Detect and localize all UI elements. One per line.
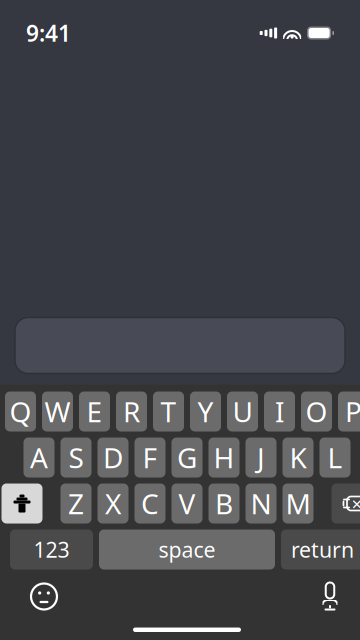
staticText: return — [291, 535, 354, 564]
button[interactable]: P — [338, 391, 360, 431]
button[interactable]: N — [245, 483, 276, 523]
button[interactable]: D — [97, 437, 128, 477]
button[interactable]: Emoji — [22, 575, 66, 617]
staticText: A — [30, 439, 48, 476]
button[interactable]: W — [42, 391, 73, 431]
button[interactable]: B — [208, 483, 239, 523]
staticText: 9:41 — [26, 18, 71, 48]
button[interactable]: return — [281, 529, 360, 569]
button[interactable]: Delete — [331, 483, 360, 523]
staticText: U — [232, 393, 252, 430]
button[interactable]: Shift — [1, 483, 42, 523]
staticText: W — [44, 393, 70, 430]
button[interactable]: V — [171, 483, 202, 523]
staticText: E — [86, 393, 102, 430]
button[interactable]: U — [227, 391, 258, 431]
staticText: O — [305, 393, 327, 430]
staticText: Q — [9, 393, 31, 430]
button[interactable]: R — [116, 391, 147, 431]
staticText: S — [68, 439, 83, 476]
button[interactable]: space — [99, 529, 275, 569]
staticText: × — [351, 491, 360, 516]
button[interactable]: C — [134, 483, 165, 523]
staticText: G — [177, 439, 197, 476]
staticText: R — [123, 393, 140, 430]
button[interactable]: H — [208, 437, 239, 477]
staticText: K — [289, 439, 306, 476]
button[interactable]: Dictation — [308, 575, 352, 617]
staticText: space — [158, 535, 215, 564]
button[interactable]: Text field — [0, 317, 360, 384]
button[interactable]: S — [60, 437, 91, 477]
staticText: J — [257, 439, 265, 476]
button[interactable]: Y — [190, 391, 221, 431]
button[interactable]: 123 — [10, 529, 93, 569]
staticText: F — [142, 439, 157, 476]
staticText: C — [141, 485, 159, 522]
button[interactable]: T — [153, 391, 184, 431]
staticText: P — [345, 393, 360, 430]
staticText: D — [103, 439, 123, 476]
staticText: L — [327, 439, 342, 476]
staticText: I — [275, 393, 284, 430]
staticText: Y — [197, 393, 213, 430]
button[interactable]: I — [264, 391, 295, 431]
button[interactable]: O — [301, 391, 332, 431]
staticText: T — [160, 393, 176, 430]
staticText: X — [105, 485, 121, 522]
staticText: H — [213, 439, 234, 476]
button[interactable]: X — [97, 483, 128, 523]
staticText: V — [178, 485, 195, 522]
button[interactable]: A — [23, 437, 54, 477]
staticText: 123 — [33, 535, 69, 564]
staticText: N — [250, 485, 271, 522]
button[interactable]: M — [282, 483, 313, 523]
button[interactable]: G — [171, 437, 202, 477]
button[interactable]: Z — [60, 483, 91, 523]
button[interactable]: Q — [5, 391, 36, 431]
button[interactable]: F — [134, 437, 165, 477]
button[interactable]: K — [282, 437, 313, 477]
staticText: Z — [68, 485, 84, 522]
button[interactable]: E — [79, 391, 110, 431]
staticText: B — [215, 485, 233, 522]
button[interactable]: J — [245, 437, 276, 477]
button[interactable]: L — [319, 437, 350, 477]
staticText: M — [285, 485, 310, 522]
